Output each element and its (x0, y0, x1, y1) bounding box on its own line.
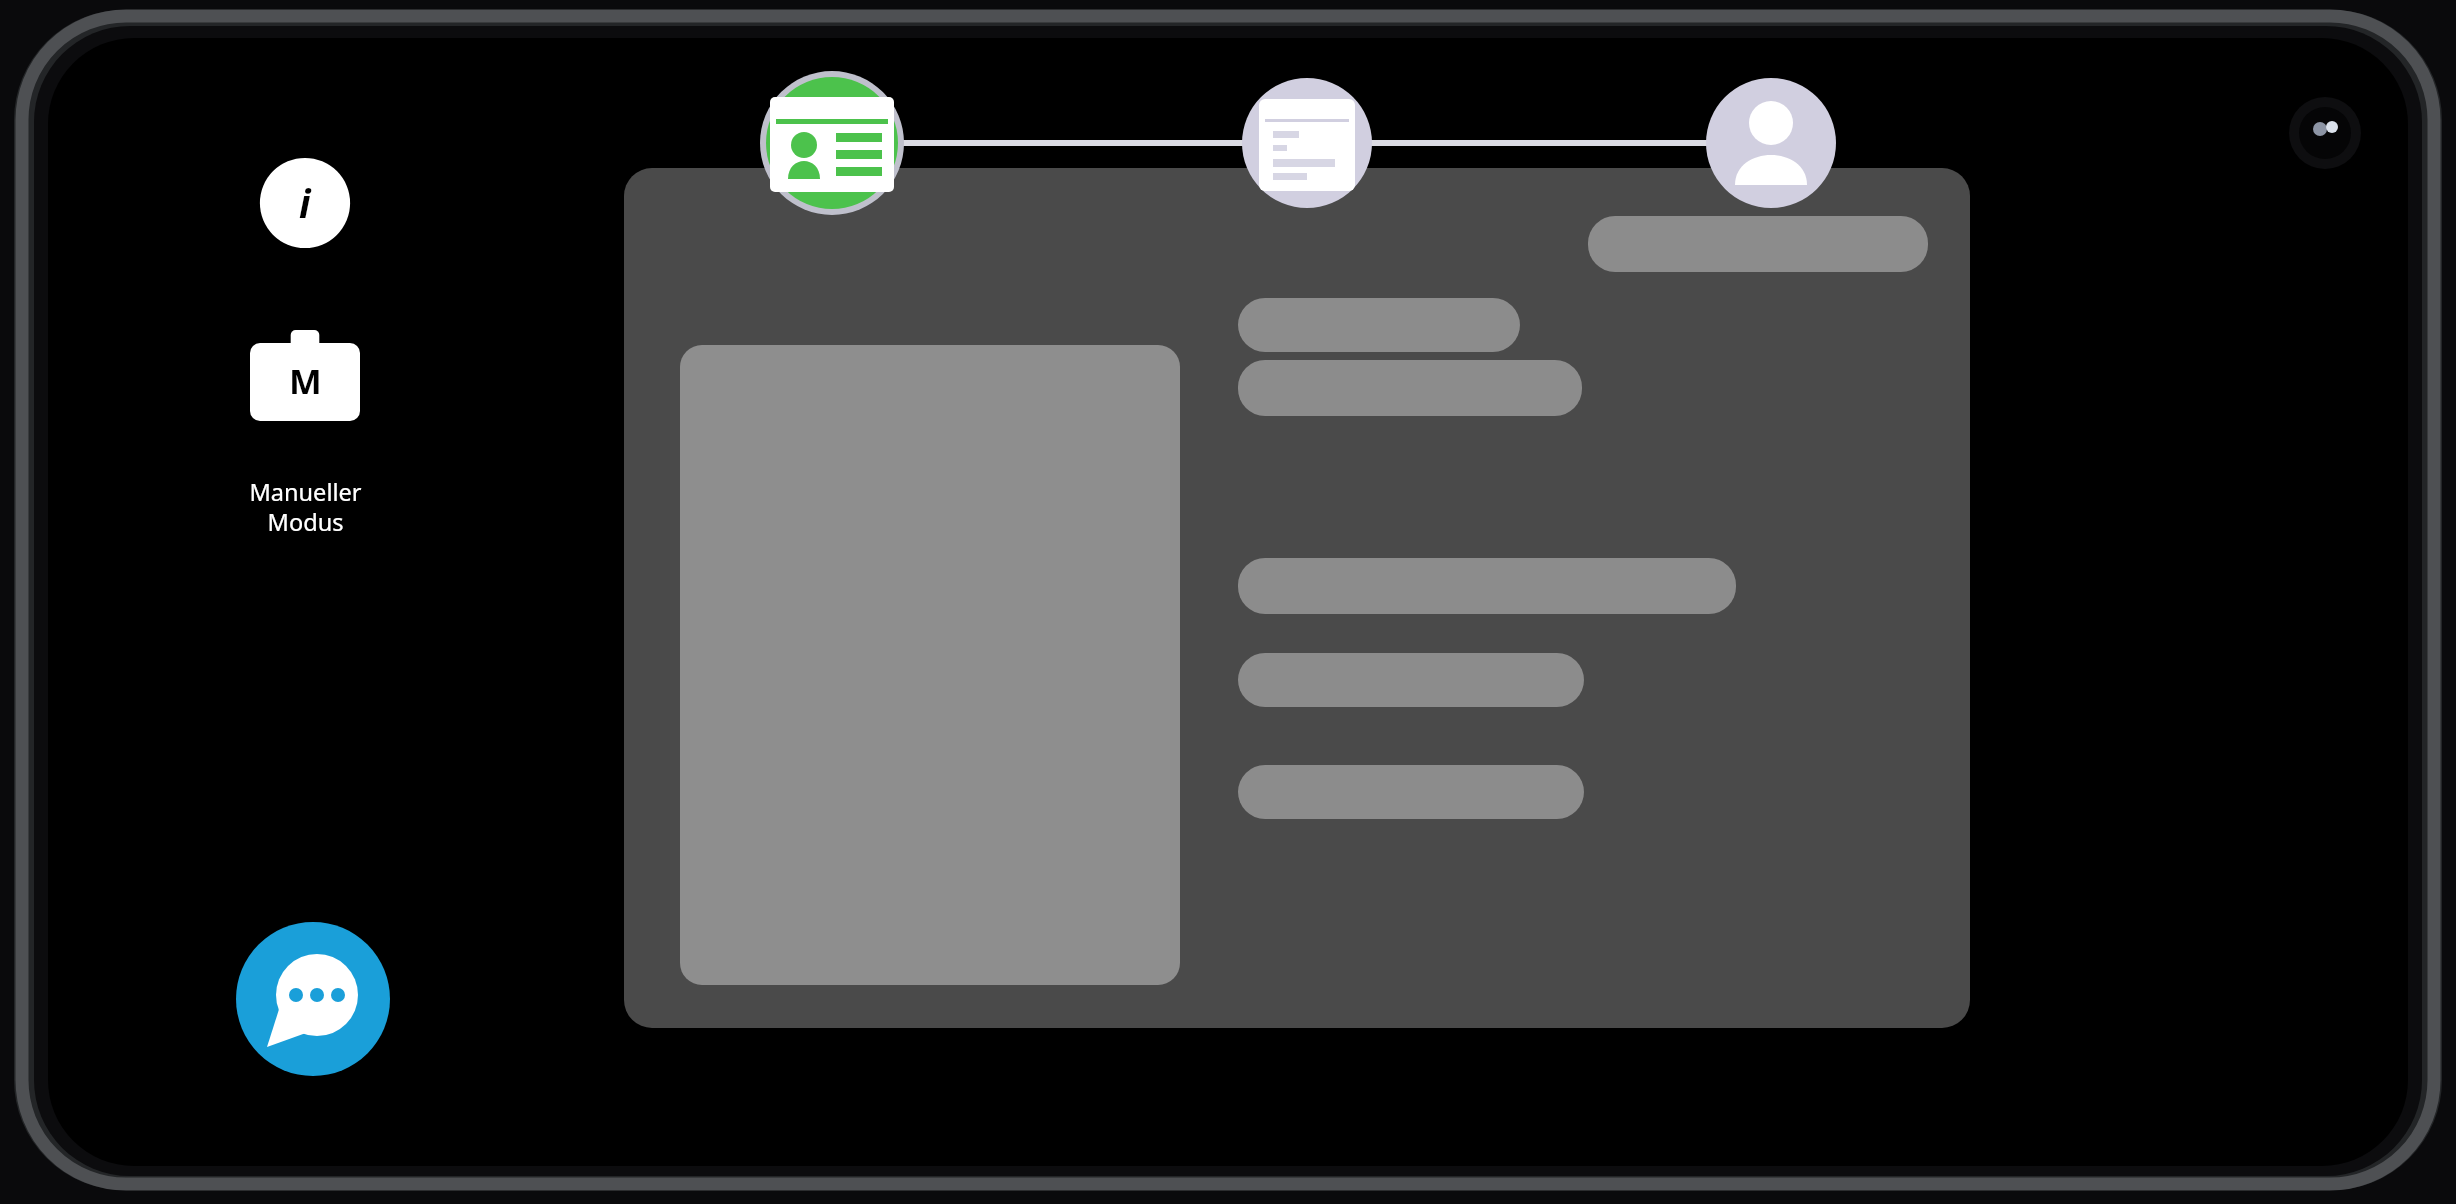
staticText: Manueller Modus (249, 476, 362, 538)
staticText: M (289, 357, 322, 404)
button[interactable]: Manueller Modus (190, 330, 420, 538)
button[interactable]: Information (250, 148, 360, 258)
other: Manueller Modus (250, 330, 360, 430)
staticText: i (299, 177, 311, 229)
button[interactable]: Dokument (1235, 71, 1379, 215)
button[interactable]: Chat (235, 921, 391, 1077)
button[interactable]: Person (1699, 71, 1843, 215)
button[interactable] (624, 168, 1970, 1028)
button[interactable]: Ausweis (760, 71, 904, 215)
